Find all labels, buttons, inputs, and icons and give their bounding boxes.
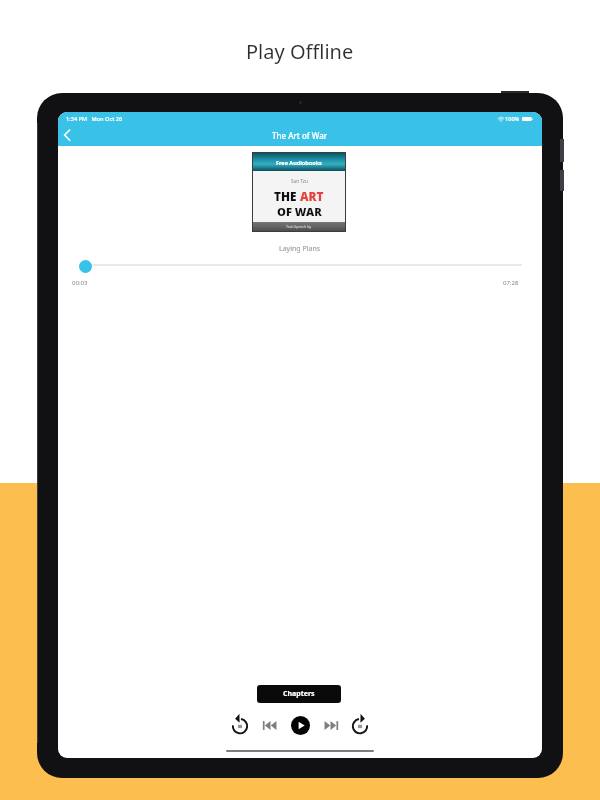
button[interactable]: Next chapter (318, 713, 342, 737)
button[interactable]: Seek (79, 260, 92, 273)
staticText: Text-Speech by (286, 224, 312, 229)
staticText: Free Audiobooks (276, 159, 322, 166)
button[interactable]: Rewind 15 seconds (228, 713, 252, 737)
button[interactable]: Back (59, 125, 79, 145)
button[interactable]: Forward 30 seconds (348, 713, 372, 737)
staticText: 07:28 (503, 279, 519, 287)
staticText: Laying Plans (279, 244, 321, 254)
staticText: Sun Tzu (291, 178, 308, 184)
staticText: 1:34 PM Mon Oct 26 (66, 115, 123, 123)
button[interactable]: Chapters (257, 685, 341, 703)
button[interactable]: Play (288, 713, 312, 737)
staticText: OF WAR (277, 204, 322, 219)
staticText: The Art of War (272, 130, 328, 141)
staticText: THE (274, 188, 300, 204)
staticText: ART (300, 188, 324, 204)
staticText: 00:03 (72, 279, 88, 287)
staticText: 100% (505, 115, 520, 123)
staticText: Chapters (283, 689, 315, 699)
button[interactable]: Previous chapter (258, 713, 282, 737)
staticText: Play Offline (246, 38, 354, 65)
